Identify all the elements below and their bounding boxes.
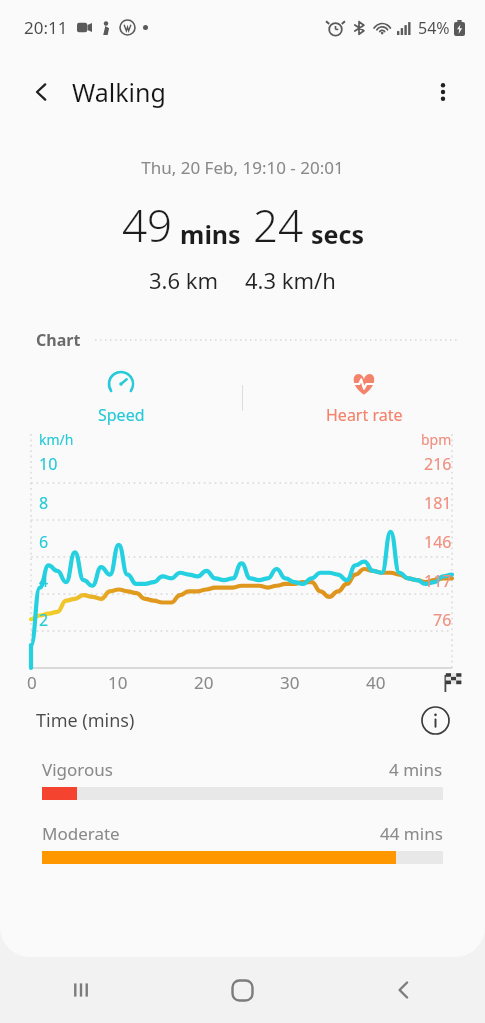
- staticText: Heart rate: [326, 404, 403, 426]
- button[interactable]: Moderate: [42, 822, 443, 864]
- staticText: 24: [253, 195, 304, 255]
- staticText: 4: [39, 570, 49, 592]
- staticText: 10: [39, 453, 58, 475]
- staticText: 20: [194, 671, 214, 694]
- staticText: 40: [366, 671, 386, 694]
- staticText: Moderate: [42, 822, 120, 845]
- staticText: 20:11: [24, 16, 68, 39]
- staticText: secs: [311, 217, 364, 251]
- staticText: Speed: [98, 404, 145, 426]
- staticText: bpm: [421, 430, 452, 449]
- staticText: 4 mins: [389, 758, 443, 781]
- staticText: 181: [424, 492, 452, 514]
- staticText: Time (mins): [36, 708, 135, 733]
- staticText: 76: [433, 609, 452, 631]
- staticText: mins: [180, 217, 241, 251]
- staticText: Thu, 20 Feb, 19:10 - 20:01: [141, 156, 344, 179]
- staticText: 49: [122, 195, 173, 255]
- button[interactable]: More options: [419, 68, 467, 116]
- button[interactable]: Back: [323, 957, 485, 1023]
- staticText: 4.3 km/h: [245, 265, 336, 295]
- staticText: km/h: [39, 430, 74, 449]
- staticText: 6: [39, 531, 49, 553]
- button[interactable]: Speed: [0, 369, 242, 426]
- staticText: 30: [280, 671, 300, 694]
- staticText: 0: [27, 671, 37, 694]
- staticText: 146: [424, 531, 452, 553]
- staticText: Walking: [72, 75, 166, 109]
- staticText: Vigorous: [42, 758, 113, 781]
- staticText: 2: [39, 609, 49, 631]
- staticText: 10: [108, 671, 128, 694]
- staticText: 3.6 km: [149, 265, 219, 295]
- staticText: Chart: [36, 329, 81, 351]
- button[interactable]: Vigorous: [42, 758, 443, 800]
- button[interactable]: Home: [161, 957, 323, 1023]
- button[interactable]: Heart rate: [243, 369, 485, 426]
- staticText: 8: [39, 492, 49, 514]
- staticText: 54%: [418, 17, 450, 39]
- button[interactable]: Recent apps: [0, 957, 161, 1023]
- button[interactable]: Information: [415, 700, 455, 740]
- staticText: 117: [424, 570, 452, 592]
- staticText: 216: [424, 453, 452, 475]
- staticText: 44 mins: [380, 822, 443, 845]
- button[interactable]: Back: [18, 68, 66, 116]
